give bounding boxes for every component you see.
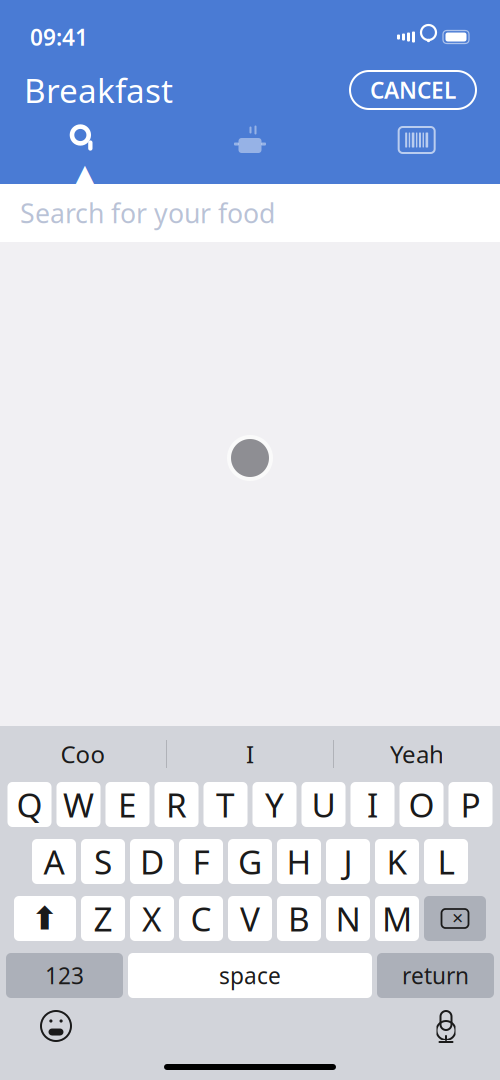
staticText: return bbox=[402, 960, 469, 990]
button[interactable]: L bbox=[424, 839, 468, 884]
button[interactable]: M bbox=[375, 896, 419, 941]
button[interactable]: Scan barcode bbox=[333, 125, 500, 171]
staticText: Z bbox=[93, 896, 112, 941]
button[interactable]: space bbox=[128, 953, 372, 998]
staticText: T bbox=[216, 782, 235, 827]
staticText: V bbox=[240, 896, 260, 941]
staticText: Y bbox=[265, 782, 284, 827]
button[interactable]: Z bbox=[81, 896, 125, 941]
staticText: Yeah bbox=[390, 738, 444, 770]
button[interactable]: B bbox=[277, 896, 321, 941]
button[interactable]: R bbox=[154, 782, 198, 827]
button[interactable]: U bbox=[301, 782, 345, 827]
staticText: K bbox=[386, 839, 407, 884]
staticText: U bbox=[311, 782, 335, 827]
staticText: O bbox=[408, 782, 434, 827]
staticText: L bbox=[437, 839, 454, 884]
button[interactable]: O bbox=[399, 782, 443, 827]
button[interactable]: 123 bbox=[6, 953, 123, 998]
staticText: W bbox=[63, 782, 94, 827]
button[interactable]: Search bbox=[0, 125, 167, 171]
staticText: ✕ bbox=[451, 910, 463, 927]
staticText: space bbox=[219, 960, 281, 990]
button[interactable]: I bbox=[167, 732, 333, 776]
staticText: C bbox=[190, 896, 211, 941]
staticText: F bbox=[192, 839, 209, 884]
button[interactable]: V bbox=[228, 896, 272, 941]
button[interactable]: Shift bbox=[14, 896, 76, 941]
button[interactable]: G bbox=[228, 839, 272, 884]
staticText: E bbox=[118, 782, 137, 827]
button[interactable]: Delete bbox=[424, 896, 486, 941]
button[interactable]: P bbox=[448, 782, 492, 827]
staticText: X bbox=[142, 896, 162, 941]
button[interactable]: K bbox=[375, 839, 419, 884]
button[interactable]: Dictation bbox=[432, 1008, 460, 1044]
staticText: Q bbox=[16, 782, 42, 827]
button[interactable]: return bbox=[377, 953, 494, 998]
button[interactable]: CANCEL bbox=[350, 71, 476, 109]
staticText: Coo bbox=[60, 738, 105, 770]
button[interactable]: X bbox=[130, 896, 174, 941]
button[interactable]: S bbox=[81, 839, 125, 884]
button[interactable]: A bbox=[32, 839, 76, 884]
staticText: ▲ bbox=[71, 156, 98, 196]
staticText: Search for your food bbox=[20, 195, 275, 231]
staticText: R bbox=[166, 782, 187, 827]
staticText: A bbox=[43, 839, 64, 884]
button[interactable]: W bbox=[56, 782, 100, 827]
button[interactable]: Search for your food bbox=[0, 184, 500, 242]
button[interactable]: I bbox=[350, 782, 394, 827]
staticText: ⬆ bbox=[31, 900, 58, 937]
button[interactable]: Y bbox=[252, 782, 296, 827]
button[interactable]: C bbox=[179, 896, 223, 941]
staticText: 123 bbox=[45, 960, 84, 990]
staticText: S bbox=[94, 839, 112, 884]
staticText: H bbox=[286, 839, 311, 884]
button[interactable]: Q bbox=[7, 782, 51, 827]
staticText: B bbox=[288, 896, 310, 941]
staticText: J bbox=[343, 839, 352, 884]
staticText: P bbox=[460, 782, 480, 827]
staticText: G bbox=[238, 839, 262, 884]
staticText: 09:41 bbox=[30, 22, 88, 52]
button[interactable]: F bbox=[179, 839, 223, 884]
staticText: CANCEL bbox=[370, 75, 456, 105]
button[interactable]: Emoji bbox=[40, 1010, 72, 1042]
button[interactable]: H bbox=[277, 839, 321, 884]
button[interactable]: Yeah bbox=[334, 732, 500, 776]
button[interactable]: J bbox=[326, 839, 370, 884]
staticText: M bbox=[382, 896, 412, 941]
staticText: D bbox=[140, 839, 164, 884]
button[interactable]: Coo bbox=[0, 732, 166, 776]
button[interactable]: Recipes bbox=[167, 125, 333, 171]
button[interactable]: N bbox=[326, 896, 370, 941]
staticText: I bbox=[246, 738, 254, 770]
staticText: Breakfast bbox=[24, 68, 173, 112]
button[interactable]: D bbox=[130, 839, 174, 884]
staticText: N bbox=[335, 896, 360, 941]
button[interactable]: E bbox=[105, 782, 149, 827]
button[interactable]: T bbox=[203, 782, 247, 827]
staticText: I bbox=[367, 782, 378, 827]
